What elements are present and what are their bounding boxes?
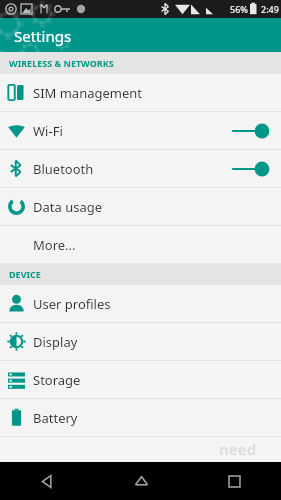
staticText: Storage xyxy=(33,371,271,389)
button[interactable] xyxy=(231,158,271,180)
button[interactable]: Recent apps xyxy=(205,462,263,500)
button[interactable]: Back xyxy=(18,462,76,500)
staticText: WIRELESS & NETWORKS xyxy=(9,57,114,69)
staticText: 56% xyxy=(230,3,248,15)
button[interactable]: User profiles xyxy=(0,285,281,322)
staticText: DEVICE xyxy=(9,268,41,280)
button[interactable]: Data usage xyxy=(0,188,281,225)
button[interactable]: Wi-Fi xyxy=(0,112,281,149)
button[interactable]: SIM management xyxy=(0,74,281,111)
staticText: Bluetooth xyxy=(33,160,231,178)
button[interactable]: Display xyxy=(0,323,281,360)
button[interactable]: Home xyxy=(112,462,170,500)
staticText: SIM management xyxy=(33,84,271,102)
staticText: User profiles xyxy=(33,295,271,313)
staticText: 2:49 xyxy=(261,3,279,15)
staticText: More... xyxy=(33,236,271,254)
staticText: Data usage xyxy=(33,198,271,216)
staticText: Battery xyxy=(33,409,271,427)
staticText: Settings xyxy=(14,26,72,46)
staticText: need xyxy=(219,439,257,459)
staticText: Display xyxy=(33,333,271,351)
button[interactable]: Battery xyxy=(0,399,281,436)
button[interactable] xyxy=(231,120,271,142)
button[interactable]: Bluetooth xyxy=(0,150,281,187)
button[interactable]: More... xyxy=(0,226,281,263)
staticText: Wi-Fi xyxy=(33,122,231,140)
button[interactable]: Storage xyxy=(0,361,281,398)
